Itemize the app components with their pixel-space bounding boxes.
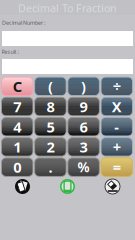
button[interactable]: C [1,77,33,95]
button[interactable]: 5 [35,117,66,136]
staticText: 7 [13,97,21,116]
staticText: - [114,117,119,136]
staticText: + [113,137,121,157]
button[interactable]: = [101,158,132,176]
staticText: 2 [46,137,54,157]
button[interactable]: X [101,97,132,116]
staticText: 1 [13,137,21,157]
button[interactable]: 0 [1,158,33,176]
staticText: 3 [80,137,88,157]
staticText: 8 [46,97,54,116]
button[interactable]: % [68,158,99,176]
button[interactable]: 7 [1,97,33,116]
staticText: 9 [80,97,88,116]
staticText: X [112,97,122,116]
staticText: = [113,157,121,177]
button[interactable]: Copy [5,175,39,197]
button[interactable]: Device [50,175,84,197]
button[interactable]: 6 [68,117,99,136]
button[interactable]: ÷ [101,77,132,95]
staticText: Result : [1,48,18,55]
button[interactable]: ) [68,77,99,95]
staticText: 6 [80,117,88,136]
button[interactable]: 9 [68,97,99,116]
button[interactable]: 8 [35,97,66,116]
staticText: ( [48,77,53,96]
staticText: Decimal To Fraction [18,1,117,15]
button[interactable]: + [101,138,132,156]
button[interactable]: 2 [35,138,66,156]
staticText: 0 [13,157,21,177]
button[interactable]: - [101,117,132,136]
button[interactable]: . [35,158,66,176]
button[interactable]: Clear [95,175,129,197]
staticText: 4 [13,117,21,136]
button[interactable]: ( [35,77,66,95]
staticText: . [48,157,52,177]
button[interactable]: 1 [1,138,33,156]
staticText: Decimal Number : [2,19,45,26]
staticText: % [78,158,90,176]
staticText: C [13,77,22,96]
staticText: ) [81,77,86,96]
staticText: ÷ [113,77,121,96]
button[interactable]: 3 [68,138,99,156]
staticText: 5 [46,117,54,136]
button[interactable]: 4 [1,117,33,136]
